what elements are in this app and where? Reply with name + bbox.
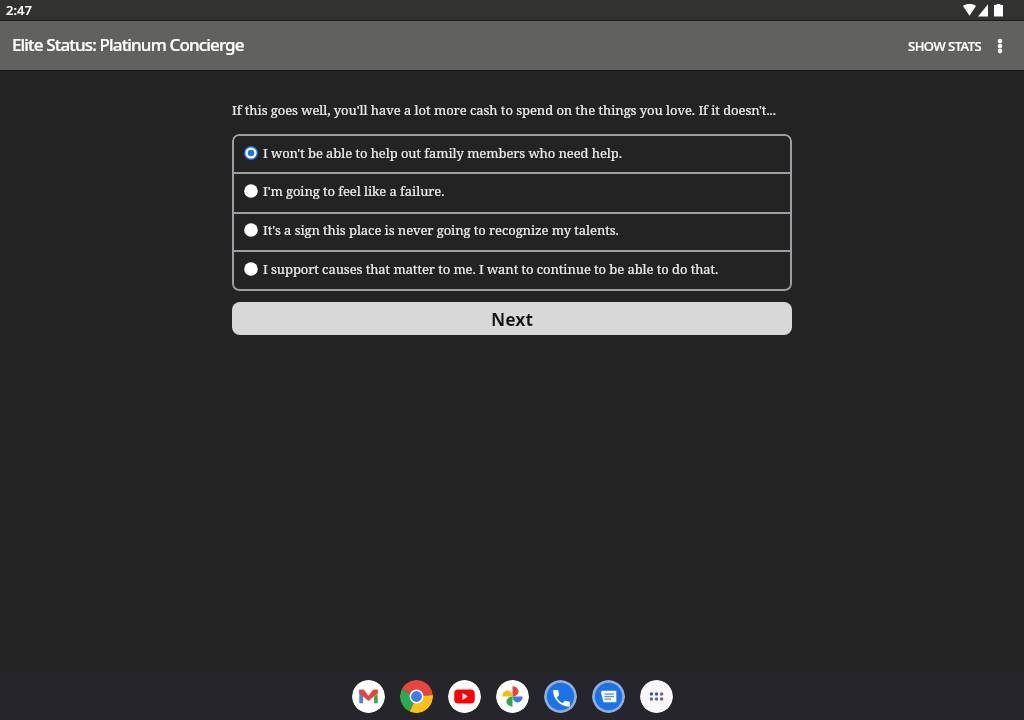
button[interactable]: Next — [232, 302, 792, 335]
staticText: SHOW STATS — [908, 37, 982, 55]
staticText: If this goes well, you'll have a lot mor… — [232, 101, 776, 119]
button[interactable]: More options — [983, 29, 1017, 63]
staticText: 2:47 — [6, 1, 32, 19]
button[interactable]: Messages — [592, 680, 625, 713]
staticText: I'm going to feel like a failure. — [263, 182, 445, 200]
button[interactable]: I won't be able to help out family membe… — [232, 134, 792, 172]
button[interactable]: Photos — [496, 680, 529, 713]
staticText: Elite Status: Platinum Concierge — [12, 33, 244, 56]
button[interactable]: All apps — [640, 680, 673, 713]
button[interactable]: I support causes that matter to me. I wa… — [232, 252, 792, 291]
button[interactable]: Gmail — [352, 680, 385, 713]
button[interactable]: Phone — [544, 680, 577, 713]
staticText: I won't be able to help out family membe… — [263, 144, 622, 162]
staticText: Next — [491, 307, 534, 331]
button[interactable]: SHOW STATS — [898, 25, 983, 67]
staticText: It's a sign this place is never going to… — [263, 221, 619, 239]
button[interactable]: YouTube — [448, 680, 481, 713]
staticText: I support causes that matter to me. I wa… — [263, 260, 719, 278]
button[interactable]: I'm going to feel like a failure. — [232, 174, 792, 212]
button[interactable]: Chrome — [400, 680, 433, 713]
button[interactable]: It's a sign this place is never going to… — [232, 214, 792, 250]
